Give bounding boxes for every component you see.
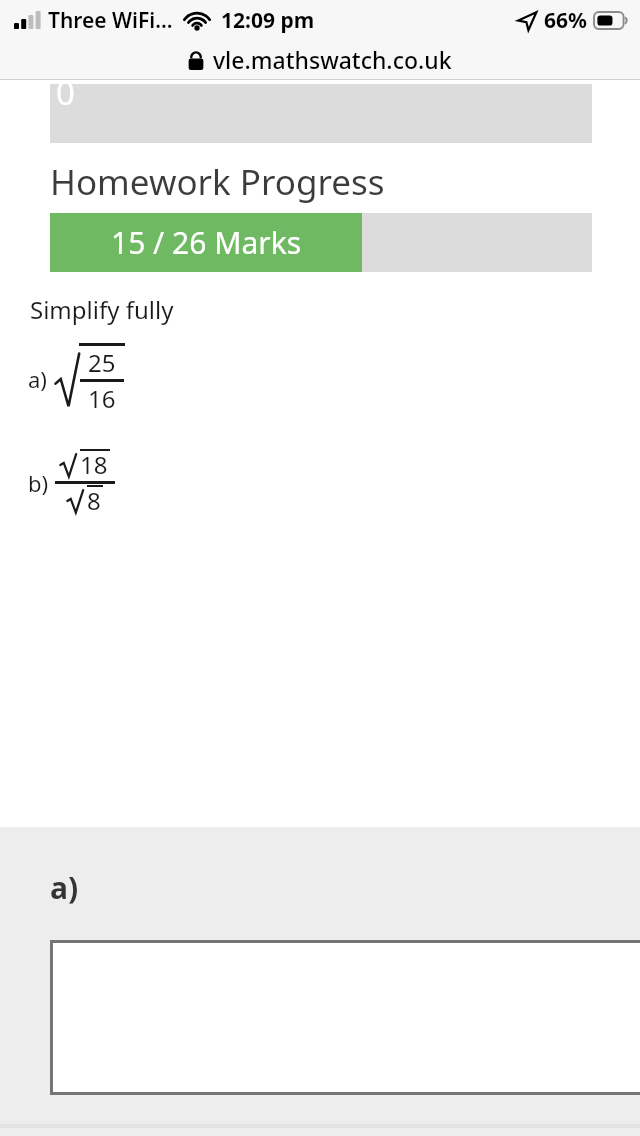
staticText: 12:09 pm	[221, 6, 315, 35]
staticText: 15 / 26 Marks	[111, 222, 302, 263]
staticText: 18	[80, 448, 108, 481]
staticText: Three WiFi...	[48, 6, 173, 35]
button[interactable]: 15 / 26 Marks	[50, 213, 592, 272]
staticText: 0	[56, 70, 75, 115]
staticText: 66%	[544, 6, 587, 35]
staticText: Homework Progress	[50, 158, 385, 206]
button[interactable]: vle.mathswatch.co.uk	[0, 40, 640, 79]
staticText: Simplify fully	[30, 293, 174, 326]
staticText: 8	[87, 484, 101, 517]
staticText: vle.mathswatch.co.uk	[213, 44, 452, 75]
staticText: 16	[88, 382, 116, 415]
staticText: a)	[28, 364, 47, 394]
button[interactable]	[50, 940, 640, 1095]
staticText: b)	[28, 468, 49, 498]
staticText: 25	[88, 346, 116, 379]
staticText: a)	[50, 867, 79, 908]
